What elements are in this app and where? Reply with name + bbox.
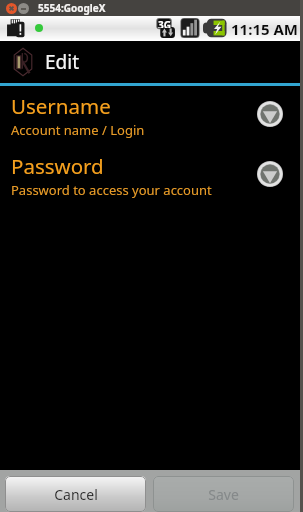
button[interactable]: Expand [257, 161, 283, 187]
button[interactable]: Save [153, 476, 294, 512]
button[interactable]: Minimize window [18, 3, 29, 14]
staticText: Account name / Login [11, 121, 145, 139]
staticText: Password [11, 152, 104, 180]
staticText: 3G [158, 18, 171, 28]
staticText: Username [11, 92, 111, 120]
staticText: Password to access your account [11, 181, 212, 199]
button[interactable]: Close window [6, 3, 17, 14]
button[interactable]: Password [0, 148, 303, 208]
staticText: Cancel [54, 485, 98, 504]
staticText: 11:15 AM [231, 19, 298, 39]
staticText: Edit [45, 49, 80, 75]
staticText: Save [208, 485, 239, 504]
staticText: 5554:GoogleX [38, 1, 106, 15]
button[interactable]: Username [0, 88, 303, 148]
button[interactable]: Expand [257, 101, 283, 127]
button[interactable]: Cancel [5, 476, 146, 512]
